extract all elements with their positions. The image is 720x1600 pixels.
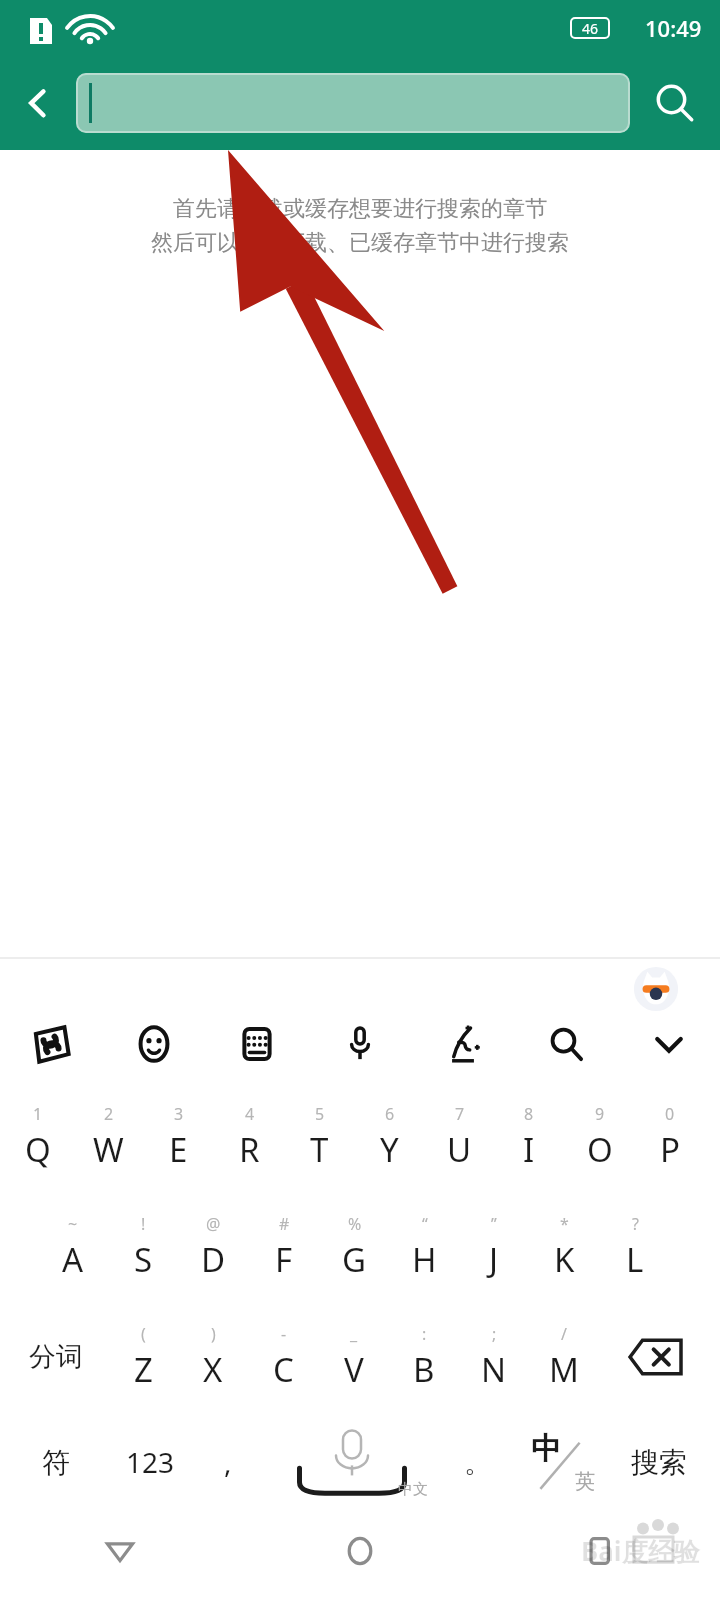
staticText: : [422, 1323, 427, 1345]
staticText: 4 [245, 1103, 255, 1125]
button[interactable]: ! [108, 1211, 178, 1283]
staticText: 5 [315, 1103, 325, 1125]
button[interactable]: 符 [16, 1423, 96, 1501]
staticText: 123 [126, 1443, 175, 1481]
button[interactable]: Backspace [610, 1321, 700, 1393]
staticText: I [523, 1127, 535, 1172]
button[interactable]: Chinese English toggle [516, 1423, 604, 1501]
button[interactable]: @ [178, 1211, 248, 1283]
button[interactable]: Handwriting [411, 1005, 514, 1083]
button[interactable]: 3 [143, 1101, 213, 1173]
button[interactable]: 2 [73, 1101, 143, 1173]
staticText: ; [492, 1323, 497, 1345]
staticText: F [275, 1237, 293, 1282]
button[interactable]: Back [0, 1502, 240, 1600]
button[interactable]: Assistant [632, 965, 680, 1013]
button[interactable]: Space [280, 1423, 430, 1501]
staticText: X [203, 1347, 223, 1392]
button[interactable]: ~ [38, 1211, 108, 1283]
staticText: ” [491, 1213, 497, 1235]
staticText: 0 [665, 1103, 675, 1125]
staticText: % [348, 1213, 362, 1235]
staticText: ? [632, 1213, 639, 1235]
button[interactable]: , [188, 1423, 268, 1501]
staticText: 分词 [29, 1340, 83, 1374]
button[interactable]: ( [108, 1321, 178, 1393]
staticText: J [489, 1237, 499, 1282]
staticText: 8 [524, 1103, 534, 1125]
staticText: K [554, 1237, 575, 1282]
staticText: O [587, 1127, 613, 1172]
button[interactable]: Voice input [308, 1005, 411, 1083]
button[interactable]: 8 [494, 1101, 564, 1173]
staticText: L [626, 1237, 644, 1282]
button[interactable]: : [389, 1321, 459, 1393]
button[interactable]: Hide keyboard [617, 1005, 720, 1083]
staticText: Z [134, 1347, 153, 1392]
button[interactable]: 7 [424, 1101, 494, 1173]
staticText: , [224, 1443, 232, 1481]
staticText: @ [206, 1213, 221, 1235]
staticText: 首先请下载或缓存想要进行搜索的章节 [173, 195, 547, 223]
staticText: P [660, 1127, 680, 1172]
button[interactable]: Search [514, 1005, 617, 1083]
staticText: * [560, 1213, 569, 1235]
staticText: 46 [582, 19, 599, 38]
button[interactable]: 9 [565, 1101, 635, 1173]
staticText: 7 [455, 1103, 465, 1125]
staticText: 10:49 [645, 13, 702, 43]
button[interactable]: - [248, 1321, 318, 1393]
staticText: 9 [595, 1103, 605, 1125]
button[interactable]: 123 [110, 1423, 190, 1501]
staticText: Y [380, 1127, 399, 1172]
staticText: D [201, 1237, 226, 1282]
staticText: A [62, 1237, 84, 1282]
button[interactable]: ; [459, 1321, 529, 1393]
staticText: B [413, 1347, 435, 1392]
staticText: 2 [104, 1103, 114, 1125]
staticText: / [561, 1323, 567, 1345]
staticText: H [412, 1237, 437, 1282]
button[interactable]: 5 [284, 1101, 354, 1173]
staticText: 6 [385, 1103, 395, 1125]
button[interactable]: Recents [480, 1502, 720, 1600]
button[interactable]: Emoji [102, 1005, 205, 1083]
button[interactable]: ” [459, 1211, 529, 1283]
staticText: 搜索 [631, 1445, 687, 1480]
button[interactable]: 6 [354, 1101, 424, 1173]
button[interactable] [76, 73, 630, 133]
button[interactable]: 分词 [10, 1321, 102, 1393]
staticText: “ [422, 1213, 428, 1235]
button[interactable]: # [249, 1211, 319, 1283]
staticText: 。 [464, 1445, 492, 1480]
button[interactable]: ) [178, 1321, 248, 1393]
button[interactable]: Search [630, 56, 720, 150]
button[interactable]: 4 [214, 1101, 284, 1173]
button[interactable]: Back [0, 56, 76, 150]
staticText: 然后可以在已下载、已缓存章节中进行搜索 [151, 229, 569, 257]
staticText: C [273, 1347, 294, 1392]
button[interactable]: Keyboard layout [205, 1005, 308, 1083]
staticText: # [279, 1213, 290, 1235]
button[interactable]: 。 [438, 1423, 518, 1501]
button[interactable]: 搜索 [604, 1423, 714, 1501]
staticText: R [239, 1127, 260, 1172]
staticText: 英 [575, 1469, 595, 1494]
staticText: M [549, 1347, 579, 1392]
button[interactable]: “ [389, 1211, 459, 1283]
button[interactable]: ? [600, 1211, 670, 1283]
button[interactable]: % [319, 1211, 389, 1283]
button[interactable]: / [529, 1321, 599, 1393]
staticText: Q [25, 1127, 51, 1172]
button[interactable]: 0 [635, 1101, 705, 1173]
button[interactable]: 1 [3, 1101, 73, 1173]
staticText: V [344, 1347, 364, 1392]
staticText: N [481, 1347, 507, 1392]
button[interactable]: * [529, 1211, 599, 1283]
staticText: 3 [174, 1103, 184, 1125]
button[interactable]: Sogou [0, 1005, 102, 1083]
button[interactable]: Home [240, 1502, 480, 1600]
staticText: E [169, 1127, 188, 1172]
button[interactable]: _ [319, 1321, 389, 1393]
staticText: 中 [531, 1430, 561, 1468]
